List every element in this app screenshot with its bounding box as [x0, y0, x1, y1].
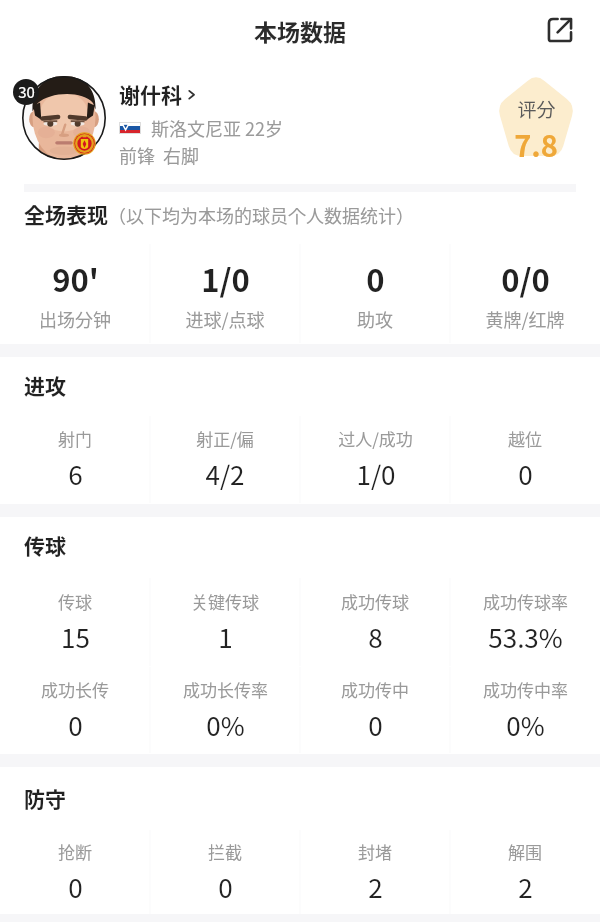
staticText: 进攻	[24, 370, 66, 400]
button[interactable]: 射门	[0, 416, 150, 503]
staticText: 6	[68, 455, 83, 493]
button[interactable]: 越位	[450, 416, 600, 503]
staticText: 0/0	[501, 256, 550, 301]
button[interactable]: 0	[300, 244, 450, 343]
staticText: 0	[518, 455, 533, 493]
button[interactable]: 90'	[0, 244, 150, 343]
button[interactable]: 成功传中	[300, 667, 450, 753]
staticText: 谢什科	[119, 79, 182, 109]
button[interactable]: 关键传球	[150, 578, 300, 666]
staticText: 出场分钟	[39, 306, 111, 332]
staticText: 15	[61, 618, 90, 656]
button[interactable]: 解围	[450, 830, 600, 915]
staticText: 传球	[24, 530, 66, 560]
staticText: 传球	[58, 589, 92, 614]
staticText: 1	[218, 618, 233, 656]
staticText: 0	[368, 706, 383, 744]
staticText: 0%	[506, 706, 545, 744]
staticText: 成功传中	[341, 677, 409, 702]
staticText: 助攻	[357, 306, 393, 332]
staticText: 成功长传率	[183, 677, 268, 702]
button[interactable]: 成功长传	[0, 667, 150, 753]
staticText: 0%	[206, 706, 245, 744]
staticText: 越位	[508, 426, 542, 451]
staticText: 评分	[517, 95, 556, 123]
staticText: 过人/成功	[338, 426, 413, 451]
staticText: 30	[18, 81, 35, 103]
staticText: 90'	[52, 256, 99, 301]
staticText: 进球/点球	[185, 306, 265, 332]
button[interactable]: Share	[538, 8, 582, 52]
staticText: 拦截	[208, 839, 242, 864]
staticText: 0	[366, 256, 385, 301]
button[interactable]: 拦截	[150, 830, 300, 915]
staticText: 1/0	[356, 455, 396, 493]
staticText: 成功传中率	[483, 677, 568, 702]
staticText: 0	[68, 868, 83, 906]
staticText: 53.3%	[488, 618, 563, 656]
staticText: 前锋 右脚	[119, 142, 200, 168]
staticText: 射正/偏	[196, 426, 254, 451]
button[interactable]: 成功传球率	[450, 578, 600, 666]
staticText: 成功长传	[41, 677, 109, 702]
staticText: 0	[68, 706, 83, 744]
staticText: 2	[518, 868, 533, 906]
staticText: 0	[218, 868, 233, 906]
staticText: （以下均为本场的球员个人数据统计）	[108, 202, 414, 228]
button[interactable]: 射正/偏	[150, 416, 300, 503]
staticText: 全场表现	[24, 199, 108, 229]
staticText: 斯洛文尼亚 22岁	[151, 115, 284, 141]
button[interactable]: 抢断	[0, 830, 150, 915]
button[interactable]: 30	[0, 68, 600, 168]
button[interactable]: 成功长传率	[150, 667, 300, 753]
staticText: 黄牌/红牌	[485, 306, 565, 332]
button[interactable]: 0/0	[450, 244, 600, 343]
button[interactable]: 传球	[0, 578, 150, 666]
staticText: 抢断	[58, 839, 92, 864]
button[interactable]: 封堵	[300, 830, 450, 915]
staticText: 4/2	[205, 455, 245, 493]
button[interactable]: 成功传球	[300, 578, 450, 666]
staticText: 本场数据	[254, 14, 346, 47]
staticText: 7.8	[514, 123, 558, 165]
staticText: 2	[368, 868, 383, 906]
staticText: 解围	[508, 839, 542, 864]
button[interactable]: 过人/成功	[300, 416, 450, 503]
staticText: 成功传球	[341, 589, 409, 614]
staticText: 防守	[24, 783, 66, 813]
staticText: 成功传球率	[483, 589, 568, 614]
staticText: 封堵	[358, 839, 392, 864]
staticText: 射门	[58, 426, 92, 451]
button[interactable]: 成功传中率	[450, 667, 600, 753]
staticText: 1/0	[201, 256, 250, 301]
button[interactable]: 1/0	[150, 244, 300, 343]
staticText: 关键传球	[191, 589, 259, 614]
staticText: 8	[368, 618, 383, 656]
